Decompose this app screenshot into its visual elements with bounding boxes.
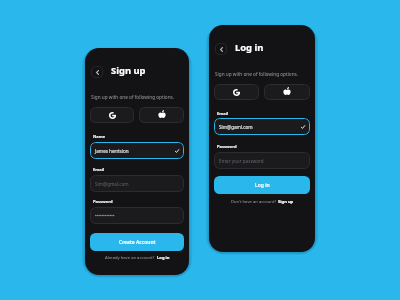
staticText: Enter your password: [219, 158, 264, 164]
button[interactable]: Sim@gaml.com: [214, 118, 310, 135]
button[interactable]: Continue with Google: [214, 84, 259, 100]
button[interactable]: Back: [215, 43, 227, 55]
staticText: Sign up with one of following options.: [215, 71, 299, 77]
staticText: Don't have an account?: [231, 199, 277, 205]
button[interactable]: Continue with Apple: [264, 84, 310, 100]
button[interactable]: Sign up: [278, 199, 294, 205]
button[interactable]: Back: [91, 66, 103, 78]
staticText: Name: [93, 134, 106, 140]
button[interactable]: Log in: [157, 255, 170, 261]
button[interactable]: Enter your password: [214, 152, 310, 169]
staticText: Already have an account?: [105, 255, 156, 261]
staticText: Password: [93, 199, 113, 205]
staticText: Sign up with one of following options.: [91, 94, 175, 100]
button[interactable]: Continue with Google: [90, 107, 134, 123]
staticText: Sim@gmal.com: [95, 181, 129, 187]
staticText: Create Account: [119, 239, 156, 246]
staticText: Sim@gaml.com: [219, 124, 253, 130]
button[interactable]: Sim@gmal.com: [90, 175, 184, 192]
staticText: James herrision: [95, 148, 129, 154]
staticText: Sign up: [111, 64, 146, 77]
button[interactable]: James herrision: [90, 142, 184, 159]
staticText: Password: [217, 144, 237, 150]
staticText: Email: [93, 167, 105, 173]
button[interactable]: Create Account: [90, 233, 184, 251]
staticText: Log in: [255, 182, 270, 189]
staticText: Email: [217, 111, 229, 117]
button[interactable]: Continue with Apple: [139, 107, 184, 123]
button[interactable]: Log in: [214, 176, 310, 194]
staticText: Log in: [235, 41, 264, 54]
button[interactable]: [90, 207, 184, 224]
